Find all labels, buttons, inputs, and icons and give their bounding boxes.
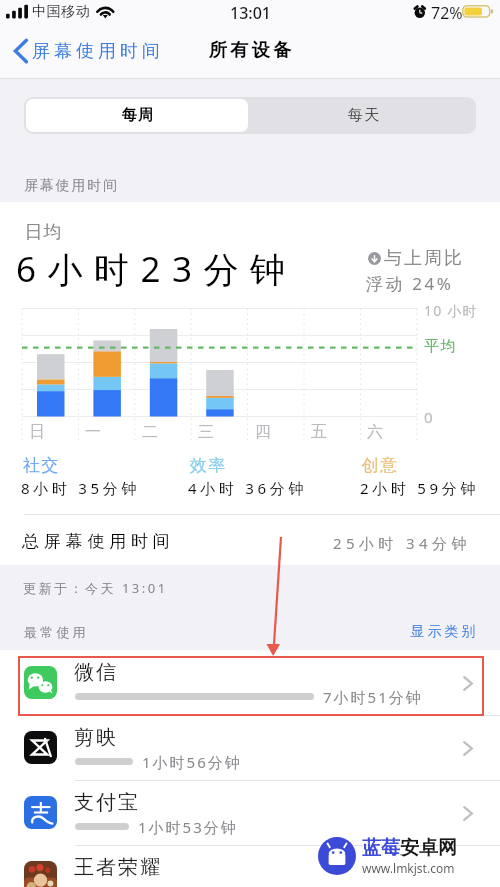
button[interactable]: 微信	[0, 650, 500, 715]
staticText: 五	[311, 422, 327, 442]
staticText: 7小时51分钟	[323, 687, 423, 707]
other: Open 剪映 details	[463, 741, 473, 756]
button[interactable]: 王者荣耀	[0, 845, 500, 887]
staticText: 创意	[361, 455, 398, 476]
staticText: 13:01	[230, 2, 271, 24]
staticText: 二	[142, 422, 158, 442]
button[interactable]: 支付宝	[0, 780, 500, 845]
staticText: 25小时 34分钟	[333, 533, 471, 553]
staticText: 2小时 59分钟	[360, 478, 480, 498]
staticText: 效率	[189, 455, 226, 476]
staticText: 平均	[424, 337, 457, 356]
staticText: 屏幕使用时间	[30, 40, 162, 63]
staticText: 6小时23分钟	[16, 245, 297, 293]
button[interactable]: 显示类别	[409, 623, 477, 641]
staticText: 浮动 24%	[366, 272, 454, 295]
staticText: 蓝莓	[362, 836, 400, 860]
button[interactable]: 每周	[26, 99, 248, 132]
staticText: 总屏幕使用时间	[22, 531, 175, 552]
staticText: www.lmkjst.com	[362, 860, 455, 876]
staticText: 8小时 35分钟	[21, 478, 141, 498]
staticText: 与上周比	[383, 247, 463, 270]
staticText: 72%	[431, 2, 463, 24]
staticText: 六	[367, 422, 383, 442]
staticText: 四	[255, 422, 271, 442]
staticText: 王者荣耀	[73, 855, 161, 880]
button[interactable]: 剪映	[0, 715, 500, 780]
staticText: 支付宝	[73, 790, 139, 815]
staticText: 每周	[121, 106, 154, 125]
staticText: 剪映	[73, 725, 117, 750]
staticText: 10 小时	[424, 301, 478, 320]
staticText: 安卓网	[400, 836, 457, 860]
staticText: 三	[198, 422, 214, 442]
staticText: 屏幕使用时间	[24, 177, 119, 195]
staticText: 4小时 36分钟	[188, 478, 308, 498]
staticText: 中国移动	[32, 3, 91, 21]
staticText: 日均	[24, 221, 62, 244]
staticText: 1小时53分钟	[138, 817, 238, 837]
other: Open 支付宝 details	[463, 806, 473, 821]
button[interactable]: 屏幕使用时间	[7, 35, 168, 68]
button[interactable]: 每天	[250, 97, 476, 134]
staticText: 每天	[347, 106, 380, 125]
staticText: 0	[424, 407, 433, 427]
staticText: 更新于：今天 13:01	[23, 579, 168, 597]
staticText: 最常使用	[24, 624, 89, 640]
staticText: 一	[85, 422, 101, 442]
other: Open 微信 details	[463, 676, 473, 691]
staticText: 显示类别	[409, 623, 477, 641]
staticText: 微信	[73, 660, 117, 685]
staticText: 所有设备	[207, 39, 293, 62]
staticText: 1小时56分钟	[142, 752, 242, 772]
staticText: 日	[29, 422, 45, 442]
staticText: 社交	[22, 455, 59, 476]
